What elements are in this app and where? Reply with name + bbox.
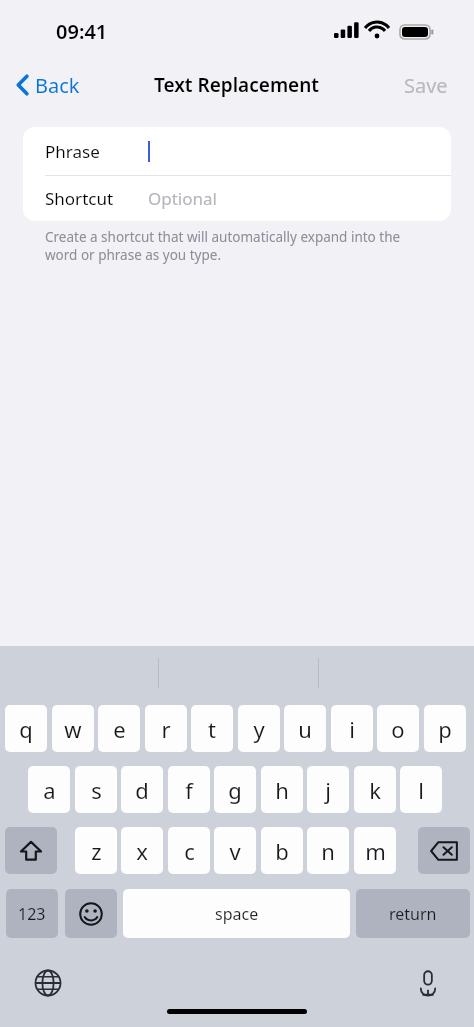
button[interactable]: Switch keyboard — [28, 963, 68, 1003]
staticText: 09:41 — [56, 18, 108, 45]
staticText: m — [365, 836, 386, 866]
staticText: Back — [35, 72, 80, 99]
button[interactable]: m — [354, 827, 396, 874]
staticText: y — [253, 714, 265, 744]
staticText: p — [438, 714, 452, 744]
staticText: c — [184, 836, 195, 866]
button[interactable]: b — [261, 827, 303, 874]
staticText: n — [321, 836, 335, 866]
staticText: Save — [404, 72, 448, 99]
button[interactable]: return — [356, 889, 470, 938]
staticText: v — [229, 836, 241, 866]
button[interactable]: v — [214, 827, 256, 874]
button[interactable]: h — [261, 766, 303, 813]
staticText: o — [391, 714, 405, 744]
button[interactable]: d — [121, 766, 163, 813]
button[interactable]: Shift — [5, 827, 57, 874]
button[interactable]: y — [238, 705, 280, 752]
staticText: Optional — [148, 187, 217, 210]
button[interactable]: g — [214, 766, 256, 813]
staticText: j — [325, 775, 331, 805]
button[interactable]: c — [168, 827, 210, 874]
staticText: space — [215, 903, 259, 925]
staticText: a — [43, 775, 56, 805]
button[interactable]: n — [307, 827, 349, 874]
button[interactable]: z — [75, 827, 117, 874]
button[interactable]: Save — [398, 66, 454, 104]
button[interactable]: Back — [10, 66, 86, 104]
button[interactable]: i — [331, 705, 373, 752]
button[interactable]: e — [98, 705, 140, 752]
button[interactable]: Phrase — [23, 127, 451, 175]
staticText: return — [389, 903, 437, 925]
button[interactable]: j — [307, 766, 349, 813]
staticText: f — [185, 775, 193, 805]
button[interactable]: w — [52, 705, 94, 752]
staticText: b — [275, 836, 289, 866]
button[interactable]: t — [191, 705, 233, 752]
button[interactable]: a — [28, 766, 70, 813]
button[interactable]: Emoji — [65, 889, 117, 938]
button[interactable]: l — [400, 766, 442, 813]
staticText: Text Replacement — [154, 72, 320, 98]
button[interactable]: Backspace — [418, 827, 470, 874]
staticText: l — [418, 775, 424, 805]
staticText: d — [135, 775, 149, 805]
staticText: z — [91, 836, 102, 866]
staticText: Shortcut — [45, 187, 114, 210]
button[interactable]: q — [5, 705, 47, 752]
staticText: Phrase — [45, 140, 100, 163]
staticText: u — [298, 714, 312, 744]
button[interactable]: k — [354, 766, 396, 813]
button[interactable]: x — [121, 827, 163, 874]
staticText: q — [19, 714, 33, 744]
staticText: 123 — [18, 903, 46, 925]
staticText: r — [161, 714, 171, 744]
staticText: t — [208, 714, 216, 744]
button[interactable]: o — [377, 705, 419, 752]
button[interactable]: s — [75, 766, 117, 813]
staticText: i — [349, 714, 355, 744]
staticText: k — [369, 775, 381, 805]
staticText: Create a shortcut that will automaticall… — [45, 228, 435, 264]
staticText: x — [136, 836, 148, 866]
staticText: w — [64, 714, 82, 744]
staticText: s — [91, 775, 102, 805]
button[interactable]: 123 — [6, 889, 58, 938]
button[interactable]: space — [123, 889, 350, 938]
button[interactable]: f — [168, 766, 210, 813]
button[interactable]: Dictate — [408, 963, 448, 1003]
button[interactable]: p — [424, 705, 466, 752]
button[interactable]: u — [284, 705, 326, 752]
staticText: h — [275, 775, 289, 805]
button[interactable]: r — [145, 705, 187, 752]
staticText: e — [113, 714, 126, 744]
staticText: g — [228, 775, 242, 805]
button[interactable]: Shortcut — [23, 176, 451, 221]
